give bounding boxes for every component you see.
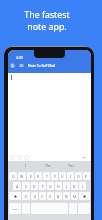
button[interactable]: T [43,172,50,180]
staticText: C [41,194,44,199]
button[interactable]: Insert photo [17,155,22,160]
button[interactable]: B [55,192,62,200]
button[interactable]: U [59,172,66,180]
staticText: P [85,174,88,179]
staticText: J [66,184,67,189]
button[interactable]: X [31,192,38,200]
staticText: G [49,184,52,189]
button[interactable]: P [83,172,90,180]
button[interactable]: Q [9,172,17,180]
button[interactable]: Account [10,63,15,68]
staticText: O [77,174,80,179]
staticText: S [25,184,27,189]
staticText: X [34,194,36,199]
button[interactable]: The [45,164,51,168]
button[interactable]: W [18,172,26,180]
staticText: T [46,174,48,179]
button[interactable]: I [25,164,27,168]
button[interactable]: O [75,172,82,180]
button[interactable]: K [71,182,78,190]
button[interactable]: F [39,182,46,190]
staticText: , [26,206,27,211]
staticText: Z [25,194,27,199]
staticText: K [73,184,76,189]
button[interactable]: N [63,192,70,200]
staticText: A [16,184,19,189]
button[interactable]: I [67,172,74,180]
staticText: ?123 [12,207,18,210]
button[interactable]: Attach file [10,155,15,160]
button[interactable]: V [47,192,54,200]
staticText: N [65,194,68,199]
staticText: L [82,184,84,189]
staticText: B [57,194,60,199]
button[interactable]: C [39,192,46,200]
staticText: H [57,184,60,189]
button[interactable]: key [9,192,21,200]
button[interactable]: , [22,203,30,214]
button[interactable]: E [27,172,34,180]
staticText: Note To Self Mail [28,63,56,68]
staticText: Q [12,174,15,179]
staticText: W [20,174,24,179]
button[interactable]: A [13,182,21,190]
button[interactable]: Z [22,192,30,200]
staticText: note app. [27,21,67,33]
button[interactable]: ?123 [9,203,21,214]
button[interactable]: R [35,172,42,180]
button[interactable]: Y [51,172,58,180]
staticText: D [33,184,36,189]
staticText: U [61,174,64,179]
staticText: V [49,194,52,199]
button[interactable]: Mail [19,63,24,68]
staticText: . [73,206,74,211]
staticText: I [70,174,72,179]
staticText: The fastest [24,9,70,21]
staticText: F [42,184,44,189]
button[interactable]: S [22,182,30,190]
button[interactable]: H [55,182,62,190]
button[interactable]: M [71,192,78,200]
staticText: 4:30 [16,55,23,60]
button[interactable]: L [79,182,86,190]
staticText: E [30,174,32,179]
button[interactable]: D [31,182,38,190]
button[interactable]: You [68,164,74,168]
button[interactable]: G [47,182,54,190]
staticText: M [73,194,77,199]
staticText: R [37,174,40,179]
button[interactable]: Send [81,154,88,161]
button[interactable]: J [63,182,70,190]
staticText: Y [54,174,56,179]
button[interactable]: . [69,203,77,214]
button[interactable]: More options [24,155,29,160]
button[interactable]: key [79,192,90,200]
